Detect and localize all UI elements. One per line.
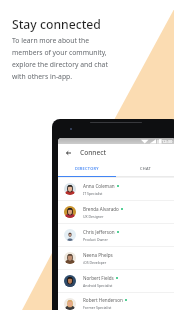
staticText: Chris Jefferson	[83, 229, 115, 235]
staticText: Robert Henderson	[83, 297, 123, 303]
staticText: Anna Coleman	[83, 183, 115, 189]
staticText: Connect	[80, 148, 107, 157]
staticText: iOS Developer	[83, 260, 107, 265]
button[interactable]: CHAT	[116, 161, 174, 176]
staticText: Neena Phelps	[83, 252, 113, 258]
staticText: To learn more about the members of your …	[12, 36, 108, 81]
staticText: CHAT	[140, 166, 152, 171]
staticText: DIRECTORY	[75, 166, 99, 171]
staticText: 12:30	[162, 139, 173, 144]
staticText: Android Specialist	[83, 283, 113, 288]
staticText: Norbert Fields	[83, 275, 114, 281]
staticText: Former Specialist	[83, 305, 112, 310]
button[interactable]: Chris Jefferson	[58, 224, 174, 246]
button[interactable]: Norbert Fields	[58, 270, 174, 292]
button[interactable]: DIRECTORY	[58, 161, 116, 176]
staticText: Brenda Alvarado	[83, 206, 119, 212]
button[interactable]: Neena Phelps	[58, 247, 174, 269]
button[interactable]: Back	[63, 148, 73, 158]
staticText: Product Owner	[83, 237, 108, 242]
staticText: UX Designer	[83, 214, 104, 219]
button[interactable]: Anna Coleman	[58, 178, 174, 200]
staticText: Stay connected	[12, 16, 101, 33]
button[interactable]: Robert Henderson	[58, 293, 174, 310]
button[interactable]: Brenda Alvarado	[58, 201, 174, 223]
staticText: IT Specialist	[83, 191, 103, 196]
